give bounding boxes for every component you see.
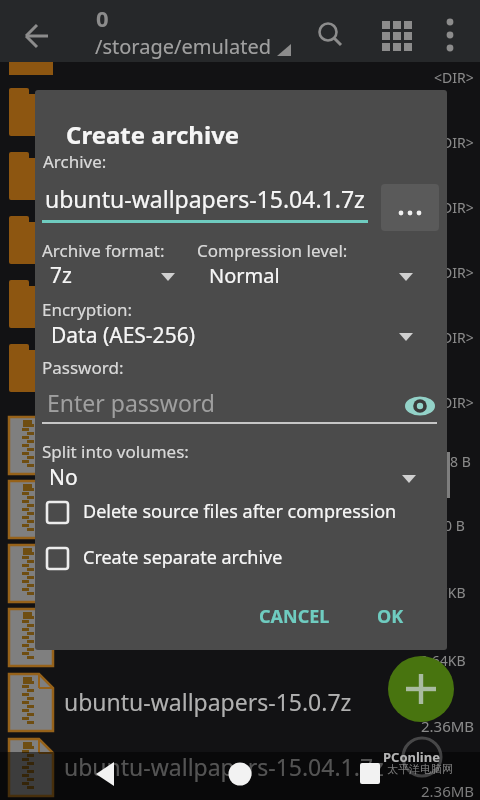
staticText: 7.47KB — [420, 583, 466, 602]
staticText: No — [49, 463, 78, 492]
staticText: Encryption: — [42, 298, 133, 321]
staticText: Create separate archive — [83, 545, 283, 570]
button[interactable] — [219, 755, 261, 797]
button[interactable] — [85, 755, 127, 797]
button[interactable] — [348, 755, 390, 797]
staticText: Password: — [42, 356, 124, 379]
staticText: ubuntu-wallpapers-15.04.1.7z — [45, 183, 365, 214]
staticText: PConline — [383, 748, 440, 766]
staticText: <DIR> — [434, 263, 474, 282]
staticText: 2.36MB — [421, 716, 475, 736]
staticText: Compression level: — [197, 239, 348, 262]
staticText: <DIR> — [434, 328, 474, 347]
staticText: <DIR> — [434, 393, 474, 412]
staticText: OK — [377, 604, 404, 629]
staticText: /storage/emulated — [95, 33, 271, 60]
staticText: Create archive — [66, 118, 240, 151]
staticText: Archive: — [43, 150, 107, 173]
staticText: <DIR> — [434, 198, 474, 217]
staticText: Normal — [209, 262, 280, 289]
button[interactable] — [44, 258, 184, 290]
staticText: <DIR> — [434, 133, 474, 152]
button[interactable] — [381, 184, 439, 231]
staticText: 7z — [50, 261, 72, 290]
staticText: 2.64KB — [420, 651, 466, 670]
staticText: 90 B — [436, 516, 465, 535]
staticText: 0 — [96, 3, 109, 33]
button[interactable] — [388, 656, 454, 722]
staticText: 太平洋电脑网 — [387, 762, 453, 776]
button[interactable] — [200, 258, 422, 290]
staticText: <DIR> — [434, 68, 474, 87]
button[interactable] — [44, 384, 422, 420]
staticText: Archive format: — [42, 239, 165, 262]
button[interactable] — [44, 496, 424, 528]
staticText: ubuntu-wallpapers-15.04.1.7z — [64, 751, 384, 782]
staticText: CANCEL — [259, 604, 330, 629]
button[interactable]: OK — [367, 596, 394, 621]
staticText: 2.36MB — [421, 781, 475, 800]
staticText: Delete source files after compression — [83, 499, 397, 524]
staticText: Split into volumes: — [42, 440, 189, 463]
staticText: Data (AES-256) — [51, 321, 195, 350]
staticText: Enter password — [47, 387, 216, 418]
button[interactable] — [44, 542, 424, 574]
staticText: 18 B — [442, 452, 471, 471]
button[interactable] — [44, 318, 422, 352]
button[interactable] — [44, 460, 422, 494]
button[interactable]: CANCEL — [249, 596, 320, 621]
staticText: ubuntu-wallpapers-15.0.7z — [64, 686, 352, 717]
